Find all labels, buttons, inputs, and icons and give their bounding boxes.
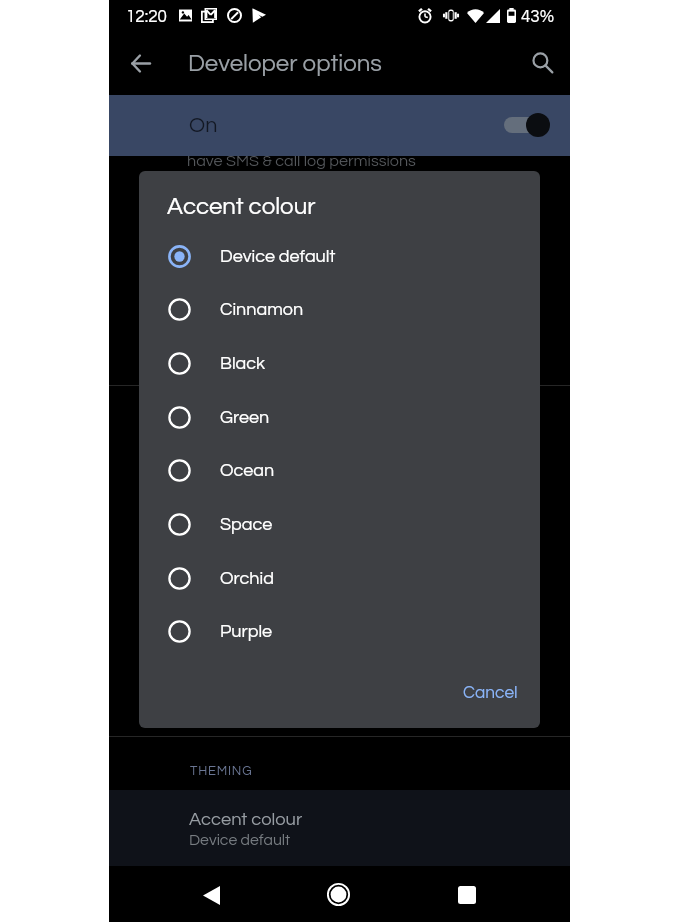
button[interactable]: Ocean <box>139 444 540 498</box>
staticText: Black <box>220 354 266 373</box>
button[interactable]: Cinnamon <box>139 283 540 337</box>
button[interactable]: Search <box>519 39 566 86</box>
staticText: Accent colour <box>189 810 303 829</box>
button[interactable]: Accent colour <box>109 790 570 866</box>
staticText: Orchid <box>220 569 274 588</box>
staticText: have SMS & call log permissions <box>187 153 416 170</box>
staticText: Cancel <box>463 684 518 702</box>
staticText: THEMING <box>190 764 253 777</box>
button[interactable]: Recent apps <box>446 874 487 915</box>
button[interactable]: Device default <box>139 230 540 284</box>
button[interactable]: Purple <box>139 605 540 659</box>
staticText: Space <box>220 515 273 534</box>
staticText: Purple <box>220 622 273 641</box>
staticText: Device default <box>220 247 336 266</box>
button[interactable]: On <box>109 95 570 156</box>
button[interactable]: Black <box>139 337 540 391</box>
staticText: On <box>189 114 218 136</box>
staticText: Developer options <box>188 51 382 76</box>
staticText: Accent colour <box>167 194 316 219</box>
staticText: Ocean <box>220 461 275 480</box>
button[interactable]: Orchid <box>139 552 540 606</box>
staticText: 43% <box>521 8 555 26</box>
staticText: Cinnamon <box>220 300 304 319</box>
staticText: Green <box>220 408 270 427</box>
staticText: Device default <box>189 832 291 848</box>
button[interactable]: Navigate up <box>117 40 164 87</box>
button[interactable]: Home <box>318 874 359 915</box>
button[interactable]: Space <box>139 498 540 552</box>
button[interactable]: Green <box>139 391 540 445</box>
staticText: 12:20 <box>126 8 167 26</box>
button[interactable]: Cancel <box>452 673 528 713</box>
button[interactable]: Back <box>191 875 232 916</box>
